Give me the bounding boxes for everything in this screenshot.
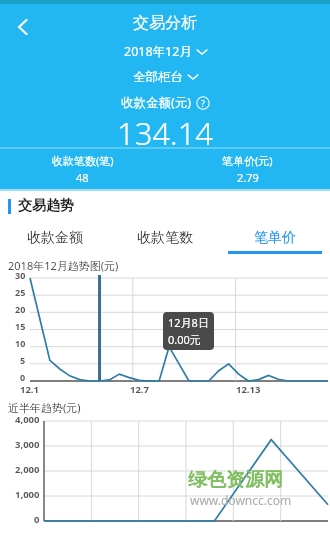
staticText: 30 [15,269,26,281]
button[interactable]: 笔单价 [220,221,330,254]
staticText: 绿色资源网 [188,468,283,492]
staticText: 5 [20,354,26,366]
staticText: 48 [76,170,89,185]
staticText: 12月8日 [168,315,209,330]
button[interactable]: 收款笔数(笔) [0,149,165,189]
staticText: ? [201,97,205,109]
staticText: 3,000 [15,438,40,451]
staticText: 0 [34,513,40,526]
staticText: www.downcc.com [190,492,292,508]
staticText: 2,000 [15,463,40,476]
staticText: 0 [20,371,26,383]
staticText: 12.7 [130,383,149,396]
button[interactable]: 2018年12月 [120,42,211,61]
staticText: 近半年趋势(元) [8,400,81,415]
button[interactable]: Back [0,4,46,50]
staticText: 2018年12月趋势图(元) [8,258,119,273]
staticText: 12.13 [236,383,261,396]
staticText: 收款金额(元) [121,94,192,111]
staticText: 20 [15,303,26,315]
staticText: 0.00元 [168,332,201,347]
staticText: 25 [15,286,26,298]
staticText: 收款金额 [27,229,83,247]
staticText: 134.14 [117,112,214,154]
button[interactable]: 收款金额 [0,221,110,254]
staticText: 2.79 [237,170,259,185]
staticText: 15 [15,320,26,332]
staticText: 2018年12月 [124,43,192,60]
staticText: 4,000 [15,413,40,426]
button[interactable]: Help [196,96,210,110]
staticText: 收款笔数 [137,229,193,247]
staticText: 笔单价 [254,229,296,247]
staticText: 笔单价(元) [222,153,273,168]
staticText: 10 [15,337,26,349]
staticText: 1,000 [15,488,40,501]
staticText: 收款笔数(笔) [52,153,114,168]
staticText: 交易趋势 [18,197,74,215]
button[interactable]: 收款笔数 [110,221,220,254]
staticText: 交易分析 [0,13,330,33]
staticText: 全部柜台 [133,69,183,85]
button[interactable]: 全部柜台 [129,68,202,86]
staticText: 12.1 [20,383,39,396]
button[interactable]: 笔单价(元) [165,149,330,189]
